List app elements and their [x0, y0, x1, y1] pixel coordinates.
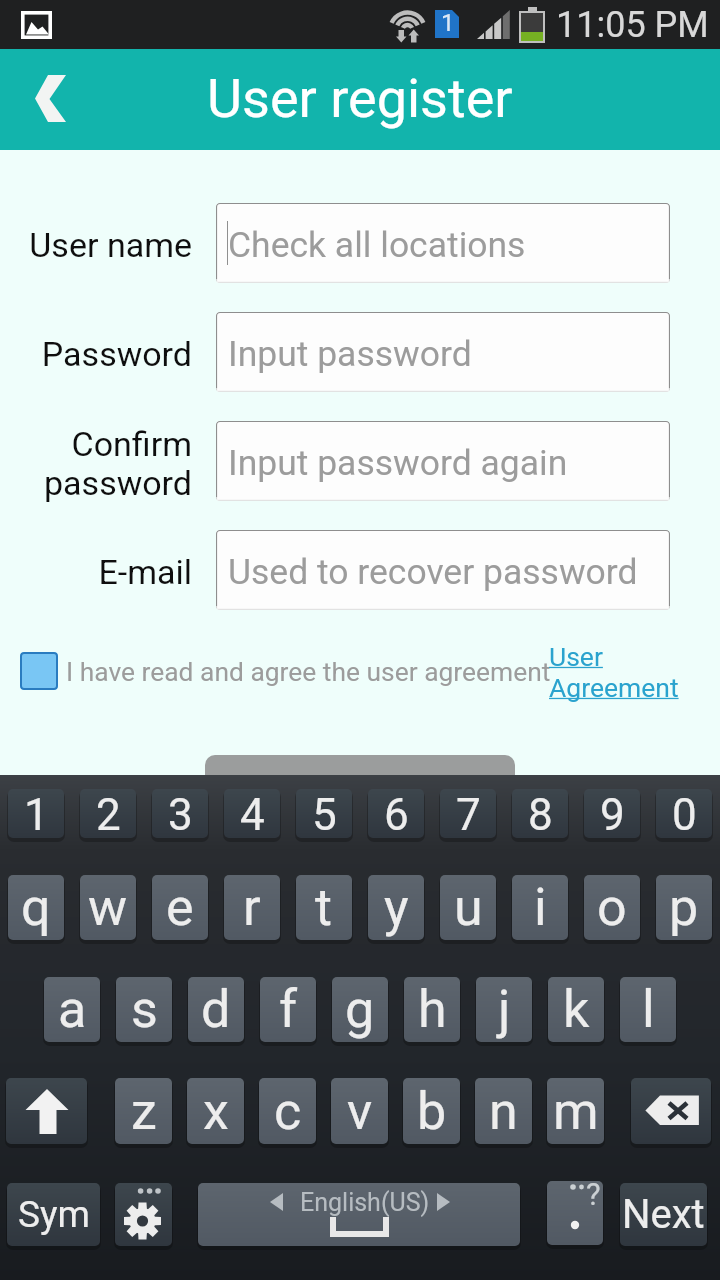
- button[interactable]: m: [547, 1078, 604, 1144]
- button[interactable]: n: [475, 1078, 532, 1144]
- button[interactable]: Used to recover password: [216, 530, 670, 610]
- staticText: Sym: [18, 1193, 90, 1236]
- button[interactable]: e: [152, 875, 208, 940]
- staticText: User name: [29, 225, 192, 265]
- staticText: o: [597, 877, 627, 938]
- button[interactable]: t: [296, 875, 352, 940]
- staticText: g: [345, 979, 375, 1040]
- button[interactable]: 3: [152, 789, 208, 838]
- button[interactable]: 6: [368, 789, 424, 838]
- staticText: Input password: [228, 333, 472, 375]
- button[interactable]: p: [656, 875, 712, 940]
- staticText: 6: [384, 789, 409, 838]
- button[interactable]: Sym: [7, 1183, 100, 1246]
- button[interactable]: d: [188, 977, 244, 1042]
- button[interactable]: 0: [656, 789, 712, 838]
- staticText: Input password again: [228, 442, 568, 484]
- staticText: v: [347, 1081, 373, 1142]
- button[interactable]: j: [476, 977, 532, 1042]
- button[interactable]: k: [548, 977, 604, 1042]
- button[interactable]: w: [80, 875, 136, 940]
- staticText: j: [498, 979, 511, 1040]
- staticText: 9: [600, 789, 625, 838]
- staticText: u: [454, 877, 483, 938]
- staticText: t: [315, 877, 333, 938]
- button[interactable]: User Agreement: [549, 641, 679, 703]
- staticText: x: [203, 1081, 229, 1142]
- button[interactable]: i: [512, 875, 568, 940]
- staticText: y: [384, 877, 409, 938]
- button[interactable]: h: [404, 977, 460, 1042]
- button[interactable]: 1: [8, 789, 64, 838]
- button[interactable]: g: [332, 977, 388, 1042]
- staticText: E-mail: [98, 552, 192, 592]
- button[interactable]: Input password: [216, 312, 670, 392]
- button[interactable]: f: [260, 977, 316, 1042]
- staticText: r: [243, 877, 261, 938]
- button[interactable]: Space: [198, 1183, 520, 1246]
- staticText: q: [21, 877, 51, 938]
- staticText: n: [489, 1081, 518, 1142]
- button[interactable]: a: [44, 977, 100, 1042]
- button[interactable]: Next: [620, 1183, 707, 1246]
- button[interactable]: x: [187, 1078, 244, 1144]
- button[interactable]: y: [368, 875, 424, 940]
- button[interactable]: Period: [547, 1181, 603, 1245]
- staticText: I have read and agree the user agreement: [66, 657, 551, 688]
- staticText: p: [669, 877, 699, 938]
- button[interactable]: Backspace: [631, 1078, 711, 1144]
- staticText: 4: [240, 789, 265, 838]
- button[interactable]: u: [440, 875, 496, 940]
- button[interactable]: c: [259, 1078, 316, 1144]
- staticText: c: [274, 1081, 302, 1142]
- button[interactable]: s: [116, 977, 172, 1042]
- staticText: h: [418, 979, 447, 1040]
- staticText: l: [642, 979, 655, 1040]
- button[interactable]: v: [331, 1078, 388, 1144]
- button[interactable]: o: [584, 875, 640, 940]
- button[interactable]: I have read and agree the user agreement: [0, 645, 720, 707]
- button[interactable]: z: [115, 1078, 172, 1144]
- staticText: 0: [672, 789, 697, 838]
- button[interactable]: l: [620, 977, 676, 1042]
- staticText: 8: [528, 789, 553, 838]
- staticText: Check all locations: [228, 224, 526, 266]
- button[interactable]: b: [403, 1078, 460, 1144]
- button[interactable]: 7: [440, 789, 496, 838]
- staticText: ?: [586, 1181, 601, 1212]
- staticText: m: [553, 1081, 599, 1142]
- staticText: Password: [41, 334, 192, 374]
- staticText: z: [131, 1081, 157, 1142]
- staticText: User register: [207, 67, 513, 130]
- button[interactable]: Input password again: [216, 421, 670, 501]
- button[interactable]: Back: [0, 49, 100, 150]
- button[interactable]: q: [8, 875, 64, 940]
- staticText: s: [131, 979, 158, 1040]
- button[interactable]: 2: [80, 789, 136, 838]
- staticText: k: [563, 979, 590, 1040]
- button[interactable]: Settings: [115, 1183, 172, 1246]
- staticText: English(US): [300, 1188, 430, 1217]
- button[interactable]: 9: [584, 789, 640, 838]
- staticText: Next: [622, 1191, 705, 1238]
- button[interactable]: Shift: [6, 1078, 87, 1144]
- staticText: 2: [96, 789, 121, 838]
- staticText: a: [58, 979, 87, 1040]
- staticText: f: [279, 979, 298, 1040]
- button[interactable]: r: [224, 875, 280, 940]
- staticText: 11:05 PM: [556, 4, 709, 46]
- staticText: 1: [24, 789, 49, 838]
- staticText: i: [534, 877, 547, 938]
- button[interactable]: Check all locations: [216, 203, 670, 283]
- button[interactable]: 4: [224, 789, 280, 838]
- staticText: 1: [441, 9, 455, 37]
- button[interactable]: 8: [512, 789, 568, 838]
- staticText: 7: [456, 789, 481, 838]
- button[interactable]: [205, 755, 515, 835]
- staticText: w: [88, 877, 128, 938]
- staticText: d: [201, 979, 231, 1040]
- staticText: 5: [312, 789, 337, 838]
- staticText: e: [166, 877, 194, 938]
- staticText: User Agreement: [549, 641, 679, 703]
- button[interactable]: 5: [296, 789, 352, 838]
